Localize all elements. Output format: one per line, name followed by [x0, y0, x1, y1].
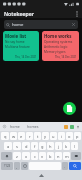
- button[interactable]: .: [62, 162, 68, 170]
- staticText: x: [25, 154, 28, 159]
- staticText: ,: [16, 164, 18, 169]
- button[interactable]: home: [4, 20, 78, 29]
- button[interactable]: Keyboard settings: [2, 124, 7, 129]
- button[interactable]: x: [22, 152, 30, 160]
- staticText: u: [52, 134, 55, 139]
- staticText: f: [34, 144, 36, 149]
- button[interactable]: ,: [14, 162, 20, 170]
- staticText: Thu, 14 Dec 2021: [55, 55, 77, 59]
- staticText: k: [65, 144, 68, 149]
- staticText: q: [4, 134, 7, 139]
- staticText: o: [68, 134, 71, 139]
- button[interactable]: i: [58, 132, 65, 140]
- staticText: e: [20, 134, 23, 139]
- button[interactable]: h: [47, 142, 54, 150]
- staticText: Multiana feature: [5, 45, 30, 49]
- staticText: c: [34, 154, 36, 159]
- staticText: m: [65, 154, 69, 159]
- staticText: l: [74, 144, 76, 149]
- button[interactable]: c: [31, 152, 38, 160]
- button[interactable]: u: [50, 132, 57, 140]
- staticText: a: [7, 144, 10, 149]
- staticText: b: [49, 154, 52, 159]
- button[interactable]: d: [22, 142, 30, 150]
- button[interactable]: s: [13, 142, 21, 150]
- staticText: d: [25, 144, 28, 149]
- staticText: Operating systems: [44, 40, 73, 44]
- staticText: homes: [27, 124, 39, 129]
- button[interactable]: z: [13, 152, 21, 160]
- button[interactable]: w: [10, 132, 17, 140]
- staticText: v: [41, 154, 44, 159]
- button[interactable]: n: [55, 152, 62, 160]
- button[interactable]: f: [31, 142, 38, 150]
- staticText: j: [58, 144, 60, 149]
- staticText: g: [41, 144, 44, 149]
- button[interactable]: Emoji: [21, 162, 28, 170]
- button[interactable]: Search: [69, 162, 81, 170]
- staticText: i: [61, 134, 63, 139]
- staticText: No say home: [5, 40, 25, 44]
- button[interactable]: j: [55, 142, 62, 150]
- button[interactable]: k: [63, 142, 70, 150]
- staticText: z: [16, 154, 18, 159]
- button[interactable]: q: [1, 132, 9, 140]
- button[interactable]: New note: [63, 102, 76, 115]
- staticText: Movie list: [5, 33, 27, 39]
- staticText: n: [57, 154, 60, 159]
- button[interactable]: r: [26, 132, 33, 140]
- button[interactable]: a: [4, 142, 12, 150]
- staticText: Memory types: [44, 50, 66, 54]
- button[interactable]: g: [39, 142, 46, 150]
- staticText: s: [16, 144, 18, 149]
- button[interactable]: Clear search: [71, 22, 76, 27]
- button[interactable]: y: [42, 132, 49, 140]
- button[interactable]: o: [66, 132, 73, 140]
- button[interactable]: Backspace: [71, 152, 81, 160]
- staticText: Arithmetic logic: [44, 45, 68, 49]
- staticText: r: [29, 134, 31, 139]
- button[interactable]: Shift: [1, 152, 12, 160]
- button[interactable]: l: [71, 142, 78, 150]
- button[interactable]: homes: [26, 124, 40, 129]
- button[interactable]: home: [9, 124, 21, 129]
- staticText: Notekeeper: [4, 10, 35, 17]
- staticText: Home works: [44, 33, 72, 39]
- staticText: .: [64, 164, 66, 169]
- staticText: home: [12, 22, 24, 28]
- staticText: h: [49, 144, 52, 149]
- button[interactable]: Home works: [42, 31, 79, 61]
- staticText: home: [10, 124, 20, 129]
- staticText: t: [37, 134, 39, 139]
- button[interactable]: ?123: [1, 162, 13, 170]
- button[interactable]: p: [74, 132, 81, 140]
- staticText: w: [12, 134, 16, 139]
- staticText: p: [76, 134, 79, 139]
- button[interactable]: e: [18, 132, 25, 140]
- button[interactable]: Voice input: [76, 125, 80, 129]
- button[interactable]: v: [39, 152, 46, 160]
- button[interactable]: m: [63, 152, 70, 160]
- button[interactable]: b: [47, 152, 54, 160]
- staticText: y: [44, 134, 47, 139]
- button[interactable]: More options: [72, 9, 81, 18]
- button[interactable]: Stickers: [64, 125, 68, 129]
- button[interactable]: t: [34, 132, 41, 140]
- staticText: Thu, 14 Dec 2021: [15, 55, 37, 59]
- button[interactable]: GIF: [70, 125, 74, 129]
- staticText: ?123: [4, 164, 11, 168]
- button[interactable]: Movie list: [3, 31, 39, 61]
